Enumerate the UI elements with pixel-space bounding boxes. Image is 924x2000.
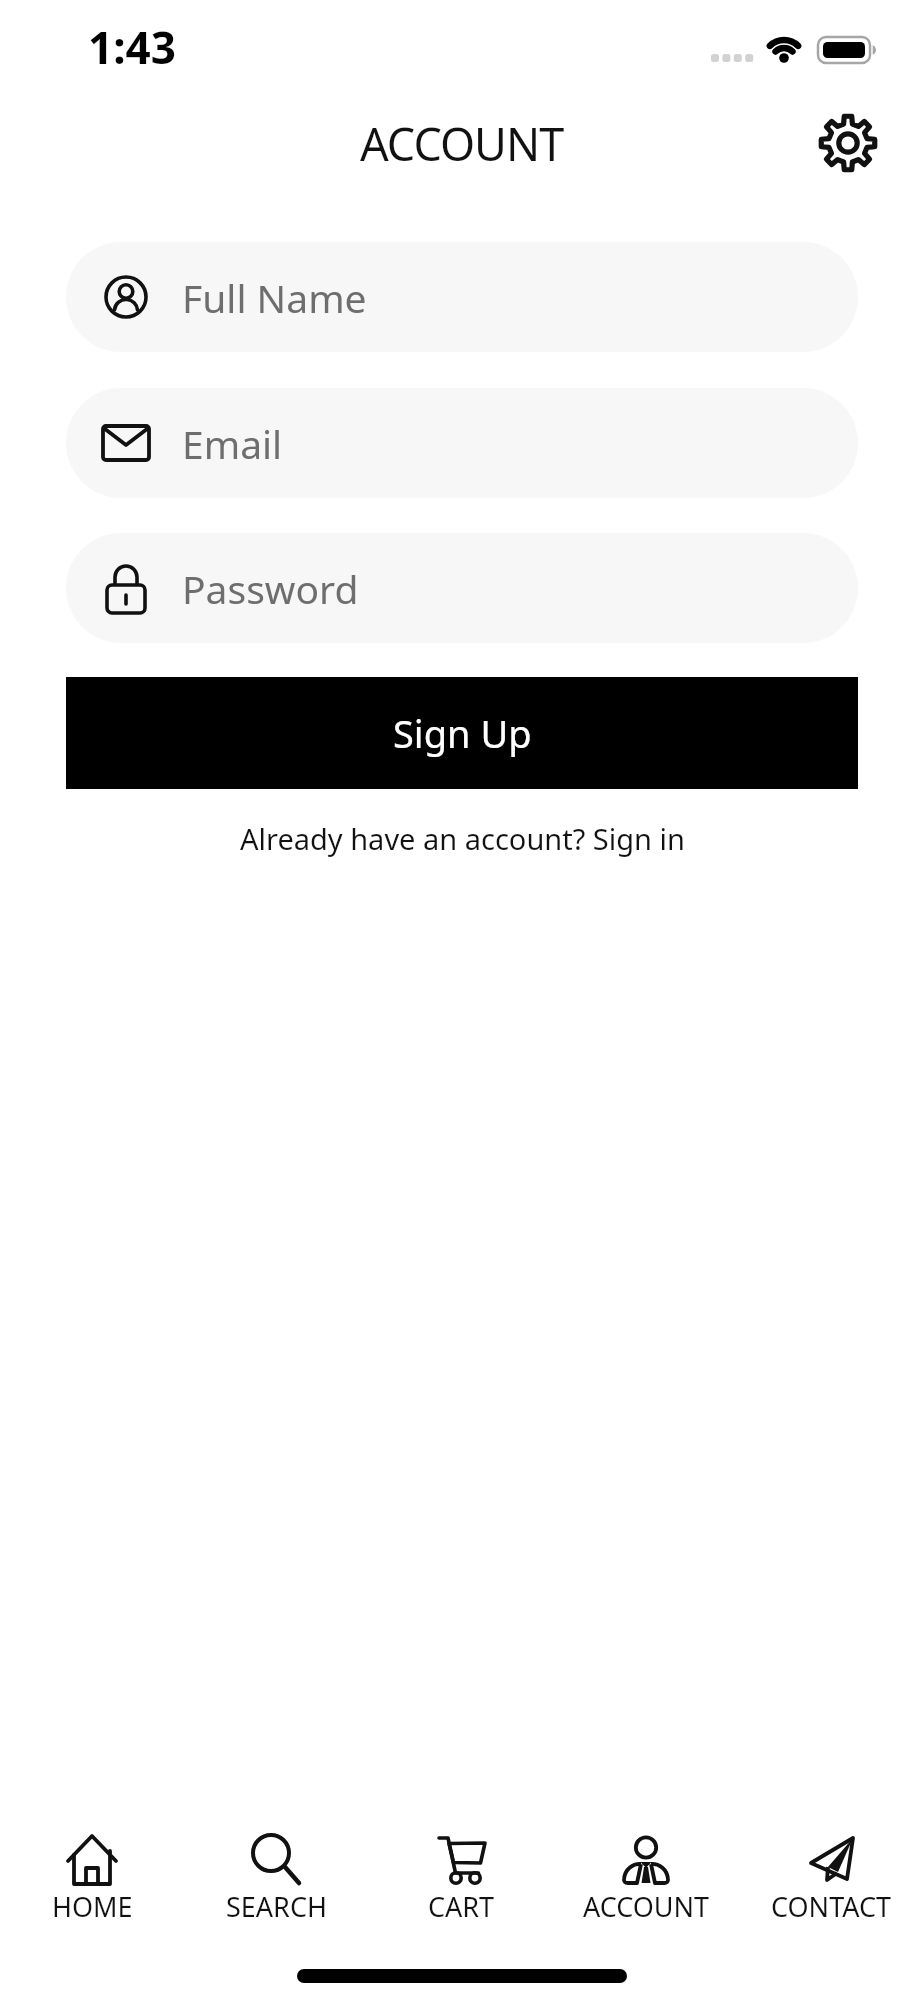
staticText: 1:43: [88, 17, 176, 77]
button[interactable]: Full Name: [66, 242, 858, 352]
button[interactable]: Password: [66, 533, 858, 643]
staticText: CART: [428, 1888, 495, 1925]
staticText: ACCOUNT: [583, 1888, 710, 1925]
staticText: Email: [182, 417, 283, 470]
staticText: SEARCH: [226, 1888, 327, 1925]
button[interactable]: ACCOUNT: [554, 1830, 739, 1950]
staticText: Sign Up: [393, 707, 532, 759]
staticText: Password: [182, 562, 359, 615]
button[interactable]: HOME: [0, 1830, 184, 1950]
staticText: ACCOUNT: [360, 113, 564, 174]
staticText: CONTACT: [771, 1888, 892, 1925]
button[interactable]: Already have an account? Sign in: [0, 819, 924, 858]
staticText: Full Name: [182, 271, 367, 324]
button[interactable]: Email: [66, 388, 858, 498]
button[interactable]: [818, 113, 878, 173]
button[interactable]: CART: [369, 1830, 554, 1950]
button[interactable]: CONTACT: [739, 1830, 924, 1950]
staticText: HOME: [52, 1888, 133, 1925]
staticText: Already have an account? Sign in: [240, 819, 685, 858]
button[interactable]: Sign Up: [66, 677, 858, 789]
button[interactable]: SEARCH: [184, 1830, 369, 1950]
